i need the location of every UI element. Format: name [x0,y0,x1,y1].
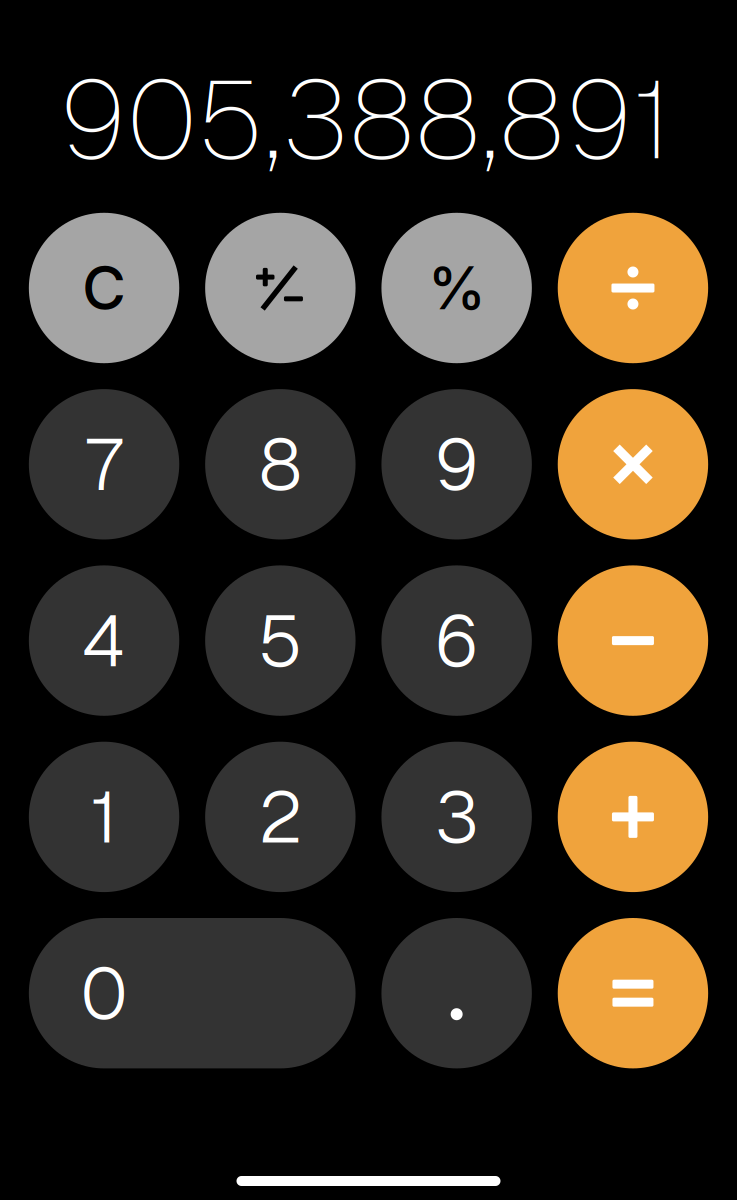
staticText: 6 [434,594,479,687]
button[interactable]: Plus minus [205,213,356,363]
staticText: 9 [434,417,479,511]
staticText: 4 [82,594,126,687]
button[interactable]: 2 [205,742,356,892]
button[interactable]: 6 [381,565,532,716]
button[interactable]: 9 [381,389,532,539]
button[interactable]: 3 [381,742,532,892]
button[interactable]: 4 [29,565,179,716]
button[interactable]: Subtract [558,565,708,716]
staticText: 7 [86,417,123,511]
button[interactable]: Clear [29,213,179,363]
button[interactable]: Multiply [558,389,708,539]
button[interactable]: Decimal point [381,918,532,1068]
button[interactable]: 5 [205,565,356,716]
staticText: 0 [81,946,128,1040]
button[interactable]: 8 [205,389,356,539]
staticText: 8 [259,417,302,511]
button[interactable]: Divide [558,213,708,363]
staticText: 2 [258,770,302,864]
staticText: 3 [435,770,479,864]
staticText: % [428,252,486,323]
staticText: 5 [258,594,303,687]
button[interactable]: 0 [29,918,356,1068]
staticText: 1 [91,770,118,864]
staticText: C [82,252,126,324]
button[interactable]: Add [558,742,708,892]
button[interactable]: 7 [29,389,179,539]
button[interactable]: Percent [381,213,532,363]
button[interactable]: Equals [558,918,708,1068]
button[interactable]: 1 [29,742,179,892]
staticText: 905,388,891 [59,48,671,190]
